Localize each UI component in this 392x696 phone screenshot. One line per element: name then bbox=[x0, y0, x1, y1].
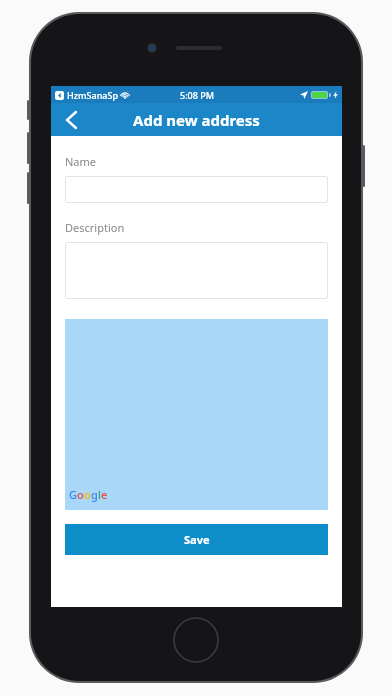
staticText: Save bbox=[184, 532, 210, 547]
staticText: HzmSanaSp bbox=[67, 89, 118, 101]
staticText: 5:08 PM bbox=[180, 89, 214, 101]
staticText: G bbox=[69, 487, 77, 502]
button[interactable]: Save bbox=[65, 524, 328, 555]
staticText: Name bbox=[65, 154, 97, 169]
staticText: o bbox=[84, 487, 91, 502]
staticText: o bbox=[77, 487, 84, 502]
button[interactable] bbox=[65, 242, 328, 299]
staticText: Description bbox=[65, 220, 125, 235]
button[interactable]: Map bbox=[65, 319, 328, 510]
staticText: g bbox=[91, 487, 98, 502]
button[interactable]: Back bbox=[51, 103, 91, 136]
staticText: Add new address bbox=[133, 110, 260, 130]
button[interactable] bbox=[65, 176, 328, 203]
staticText: e bbox=[101, 487, 108, 502]
staticText: l bbox=[98, 487, 101, 502]
